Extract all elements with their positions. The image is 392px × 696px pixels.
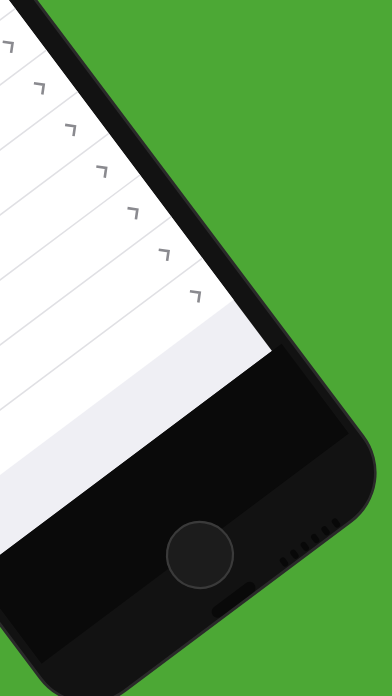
button[interactable]: iPhone app preview [0, 0, 392, 696]
